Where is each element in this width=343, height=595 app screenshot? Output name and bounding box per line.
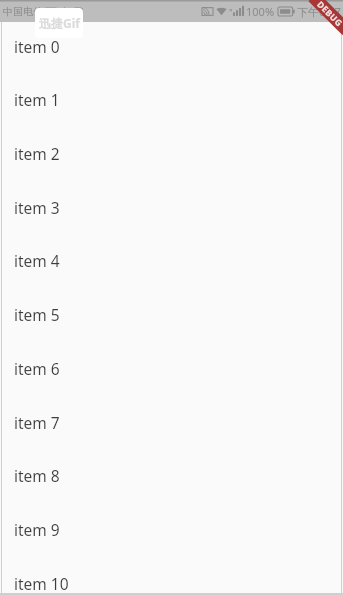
staticText: item 6 (14, 358, 60, 379)
button[interactable]: item 1 (0, 72, 343, 126)
button[interactable]: item 0 (0, 19, 343, 73)
button[interactable]: item 7 (0, 395, 343, 449)
staticText: item 0 (14, 36, 60, 57)
button[interactable]: item 8 (0, 448, 343, 502)
button[interactable]: item 9 (0, 502, 343, 556)
staticText: item 3 (14, 197, 60, 218)
button[interactable]: item 3 (0, 180, 343, 234)
button[interactable]: item 2 (0, 126, 343, 180)
staticText: item 1 (14, 89, 60, 110)
staticText: 中国电信 (3, 5, 43, 18)
button[interactable]: item 6 (0, 341, 343, 395)
staticText: item 5 (14, 304, 60, 325)
staticText: item 4 (14, 250, 60, 271)
other: Debug banner (295, 0, 343, 48)
staticText: 下午6:37 (297, 4, 341, 19)
staticText: item 8 (14, 465, 60, 486)
staticText: 迅捷Gif (39, 15, 80, 31)
button[interactable]: item 4 (0, 233, 343, 287)
staticText: item 2 (14, 143, 60, 164)
staticText: item 9 (14, 519, 60, 540)
button[interactable]: item 5 (0, 287, 343, 341)
button[interactable]: item 10 (0, 556, 343, 595)
staticText: " (229, 6, 233, 18)
staticText: item 7 (14, 412, 60, 433)
staticText: item 10 (14, 573, 69, 594)
staticText: DEBUG (314, 0, 343, 29)
staticText: 100% (246, 4, 275, 19)
